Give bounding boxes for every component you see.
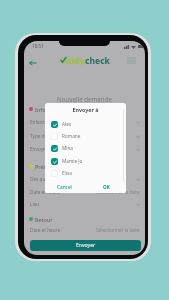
staticText: Sélectionner la date [96,189,140,195]
staticText: Mina [62,145,73,151]
staticText: Date et heure [30,227,61,233]
staticText: Envoyer [76,242,96,249]
staticText: Envoyer à [45,106,126,113]
staticText: Nouvelle demande [24,95,145,103]
staticText: Romane [62,133,81,139]
button[interactable]: Date et heure [30,187,140,197]
button[interactable]: Mamie Jo [51,156,119,166]
button[interactable]: Enfant [30,117,140,127]
button[interactable]: Type d'activité [30,131,140,141]
staticText: Lola [62,182,72,188]
staticText: 10:51 [32,43,44,49]
button[interactable]: Romane [51,131,119,141]
button[interactable]: Back [27,57,38,68]
staticText: OK [103,184,110,190]
staticText: Retour [35,216,53,223]
button[interactable]: Lieu [30,199,140,209]
button[interactable]: OK [103,183,110,191]
staticText: Elisa [62,170,72,176]
button[interactable]: Lola [51,180,119,190]
staticText: Type d'activité [30,133,62,139]
staticText: Date et heure [30,189,61,195]
button[interactable]: Dès que possible [30,174,140,184]
button[interactable]: Alex [51,119,119,129]
staticText: Information [35,106,67,113]
staticText: check [85,55,110,65]
staticText: Alex [62,121,72,127]
staticText: Mamie Jo [62,158,83,164]
staticText: Cancel [57,184,72,190]
button[interactable]: Envoyer à [30,144,140,154]
button[interactable]: Envoyer [30,240,141,251]
staticText: Envoyer à [30,146,52,152]
staticText: Lieu [30,201,40,207]
button[interactable]: Cancel [57,183,72,191]
staticText: Sélectionner la date [96,227,140,233]
button[interactable]: Mina [51,143,119,153]
button[interactable]: Elisa [51,168,119,178]
staticText: Dès que possible [30,176,68,182]
staticText: Présence [35,163,59,170]
staticText: Enfant [30,119,45,125]
button[interactable]: Date et heure [30,225,140,235]
staticText: Kidy [66,55,85,65]
